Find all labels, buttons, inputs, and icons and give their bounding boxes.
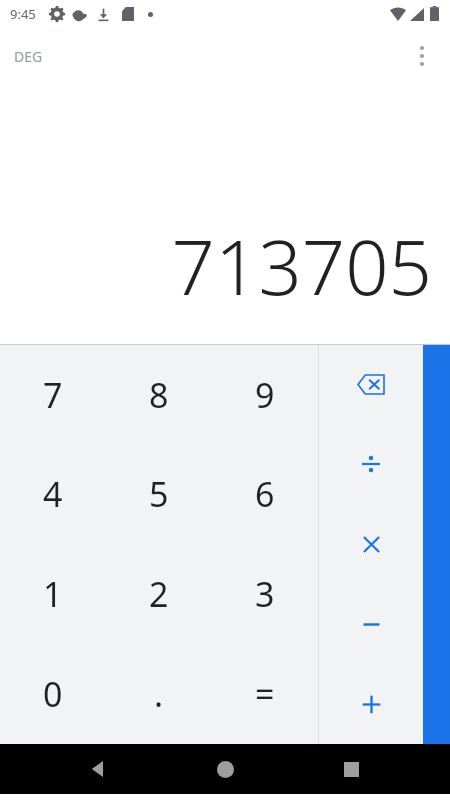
button[interactable]: 6 xyxy=(212,444,318,544)
staticText: 3 xyxy=(255,571,275,617)
staticText: DEG xyxy=(14,47,43,66)
staticText: . xyxy=(154,671,164,717)
button[interactable]: Back xyxy=(75,745,123,793)
staticText: 2 xyxy=(149,571,169,617)
staticText: 7 xyxy=(43,372,63,418)
button[interactable]: 8 xyxy=(106,345,212,444)
staticText: 4 xyxy=(43,471,63,517)
staticText: 8 xyxy=(149,372,169,418)
button[interactable]: 3 xyxy=(212,544,318,644)
button[interactable]: Plus xyxy=(319,664,423,744)
button[interactable]: . xyxy=(106,644,212,744)
button[interactable]: 7 xyxy=(0,345,106,444)
button[interactable]: Divide xyxy=(319,424,423,504)
staticText: 6 xyxy=(255,471,275,517)
button[interactable]: 1 xyxy=(0,544,106,644)
staticText: 1 xyxy=(43,571,63,617)
staticText: 713705 xyxy=(0,214,432,318)
button[interactable]: 0 xyxy=(0,644,106,744)
button[interactable]: 2 xyxy=(106,544,212,644)
button[interactable]: Recent apps xyxy=(327,745,375,793)
staticText: 5 xyxy=(149,471,169,517)
staticText: = xyxy=(255,671,275,717)
button[interactable]: 4 xyxy=(0,444,106,544)
button[interactable]: 9 xyxy=(212,345,318,444)
button[interactable]: 5 xyxy=(106,444,212,544)
staticText: 0 xyxy=(43,671,63,717)
button[interactable]: Multiply xyxy=(319,504,423,584)
staticText: 9:45 xyxy=(10,5,36,23)
button[interactable]: Home xyxy=(201,745,249,793)
button[interactable]: Minus xyxy=(319,584,423,664)
button[interactable]: Backspace xyxy=(319,345,423,424)
button[interactable]: More options xyxy=(402,36,442,76)
button[interactable]: = xyxy=(212,644,318,744)
button[interactable]: DEG xyxy=(6,41,51,72)
staticText: 9 xyxy=(255,372,275,418)
